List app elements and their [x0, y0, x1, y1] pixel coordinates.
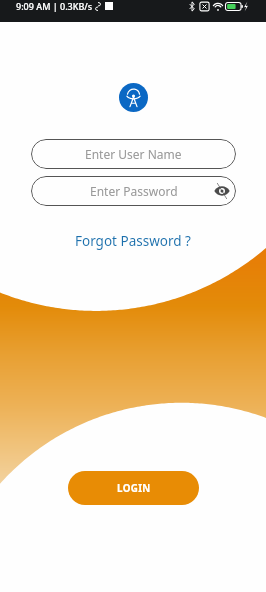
button[interactable]: Toggle password visibility [212, 181, 232, 201]
button[interactable]: LOGIN [68, 471, 199, 505]
button[interactable]: Enter User Name [31, 139, 236, 169]
button[interactable]: Enter Password [31, 176, 236, 206]
staticText: Enter Password [90, 183, 178, 199]
staticText: Enter User Name [85, 146, 182, 162]
other: App logo [119, 83, 148, 112]
button[interactable]: Forgot Password ? [67, 228, 199, 254]
staticText: LOGIN [117, 482, 151, 495]
staticText: 9:09 AM | 0.3KB/s [16, 0, 93, 12]
staticText: Forgot Password ? [75, 232, 191, 250]
